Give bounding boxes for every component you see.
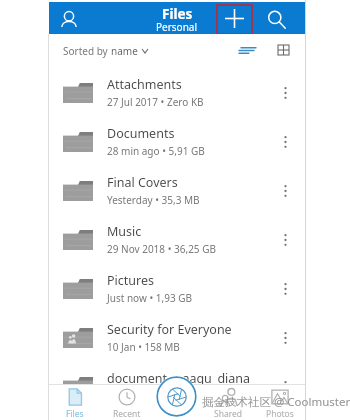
button[interactable]: Pictures — [49, 264, 305, 313]
button[interactable]: Switch to grid view — [267, 40, 299, 60]
staticText: Files — [66, 408, 84, 420]
button[interactable]: Security for Everyone — [49, 313, 305, 362]
button[interactable]: Files — [49, 384, 101, 420]
staticText: Recent — [113, 408, 141, 420]
staticText: 29 Nov 2018 • 36,25 GB — [107, 242, 216, 256]
staticText: name — [111, 44, 138, 58]
staticText: Documents — [107, 125, 175, 142]
button[interactable]: More options — [266, 117, 305, 166]
button[interactable]: Search — [262, 6, 290, 32]
button[interactable]: More options — [266, 362, 305, 384]
button[interactable]: Attachments — [49, 68, 305, 117]
button[interactable]: Shared — [203, 384, 254, 420]
button[interactable]: document_…aagu_diana — [49, 362, 305, 384]
button[interactable]: More options — [266, 264, 305, 313]
button[interactable]: Music — [49, 215, 305, 264]
button[interactable]: Recent — [101, 384, 152, 420]
staticText: 27 Jul 2017 • Zero KB — [107, 95, 204, 109]
button[interactable]: Sorted by — [57, 40, 150, 62]
staticText: 掘金技术社区 @ Coolmuster — [202, 394, 350, 410]
staticText: document_…aagu_diana — [107, 370, 251, 384]
staticText: Just now • 1,93 GB — [107, 291, 192, 305]
staticText: Photos — [266, 408, 294, 420]
staticText: Final Covers — [107, 174, 178, 191]
button[interactable]: Documents — [49, 117, 305, 166]
button[interactable]: More options — [266, 68, 305, 117]
button[interactable]: More options — [266, 166, 305, 215]
button[interactable]: More options — [266, 215, 305, 264]
staticText: Shared — [214, 408, 243, 420]
button[interactable]: Photos — [254, 384, 305, 420]
button[interactable]: Add — [220, 5, 248, 31]
staticText: Security for Everyone — [107, 321, 232, 338]
button[interactable]: Scan document — [156, 376, 197, 417]
staticText: Pictures — [107, 272, 154, 289]
staticText: Sorted by — [63, 44, 111, 58]
button[interactable]: Final Covers — [49, 166, 305, 215]
staticText: Personal — [156, 20, 198, 34]
staticText: Yesterday • 35,3 MB — [107, 193, 200, 207]
button[interactable]: More options — [266, 313, 305, 362]
staticText: Attachments — [107, 76, 182, 93]
staticText: Files — [162, 5, 193, 23]
staticText: Music — [107, 223, 142, 240]
staticText: 28 min ago • 5,91 GB — [107, 144, 205, 158]
button[interactable]: Sort options — [231, 40, 263, 60]
staticText: 10 Jan • 158 MB — [107, 340, 180, 354]
button[interactable]: Account — [55, 6, 83, 32]
